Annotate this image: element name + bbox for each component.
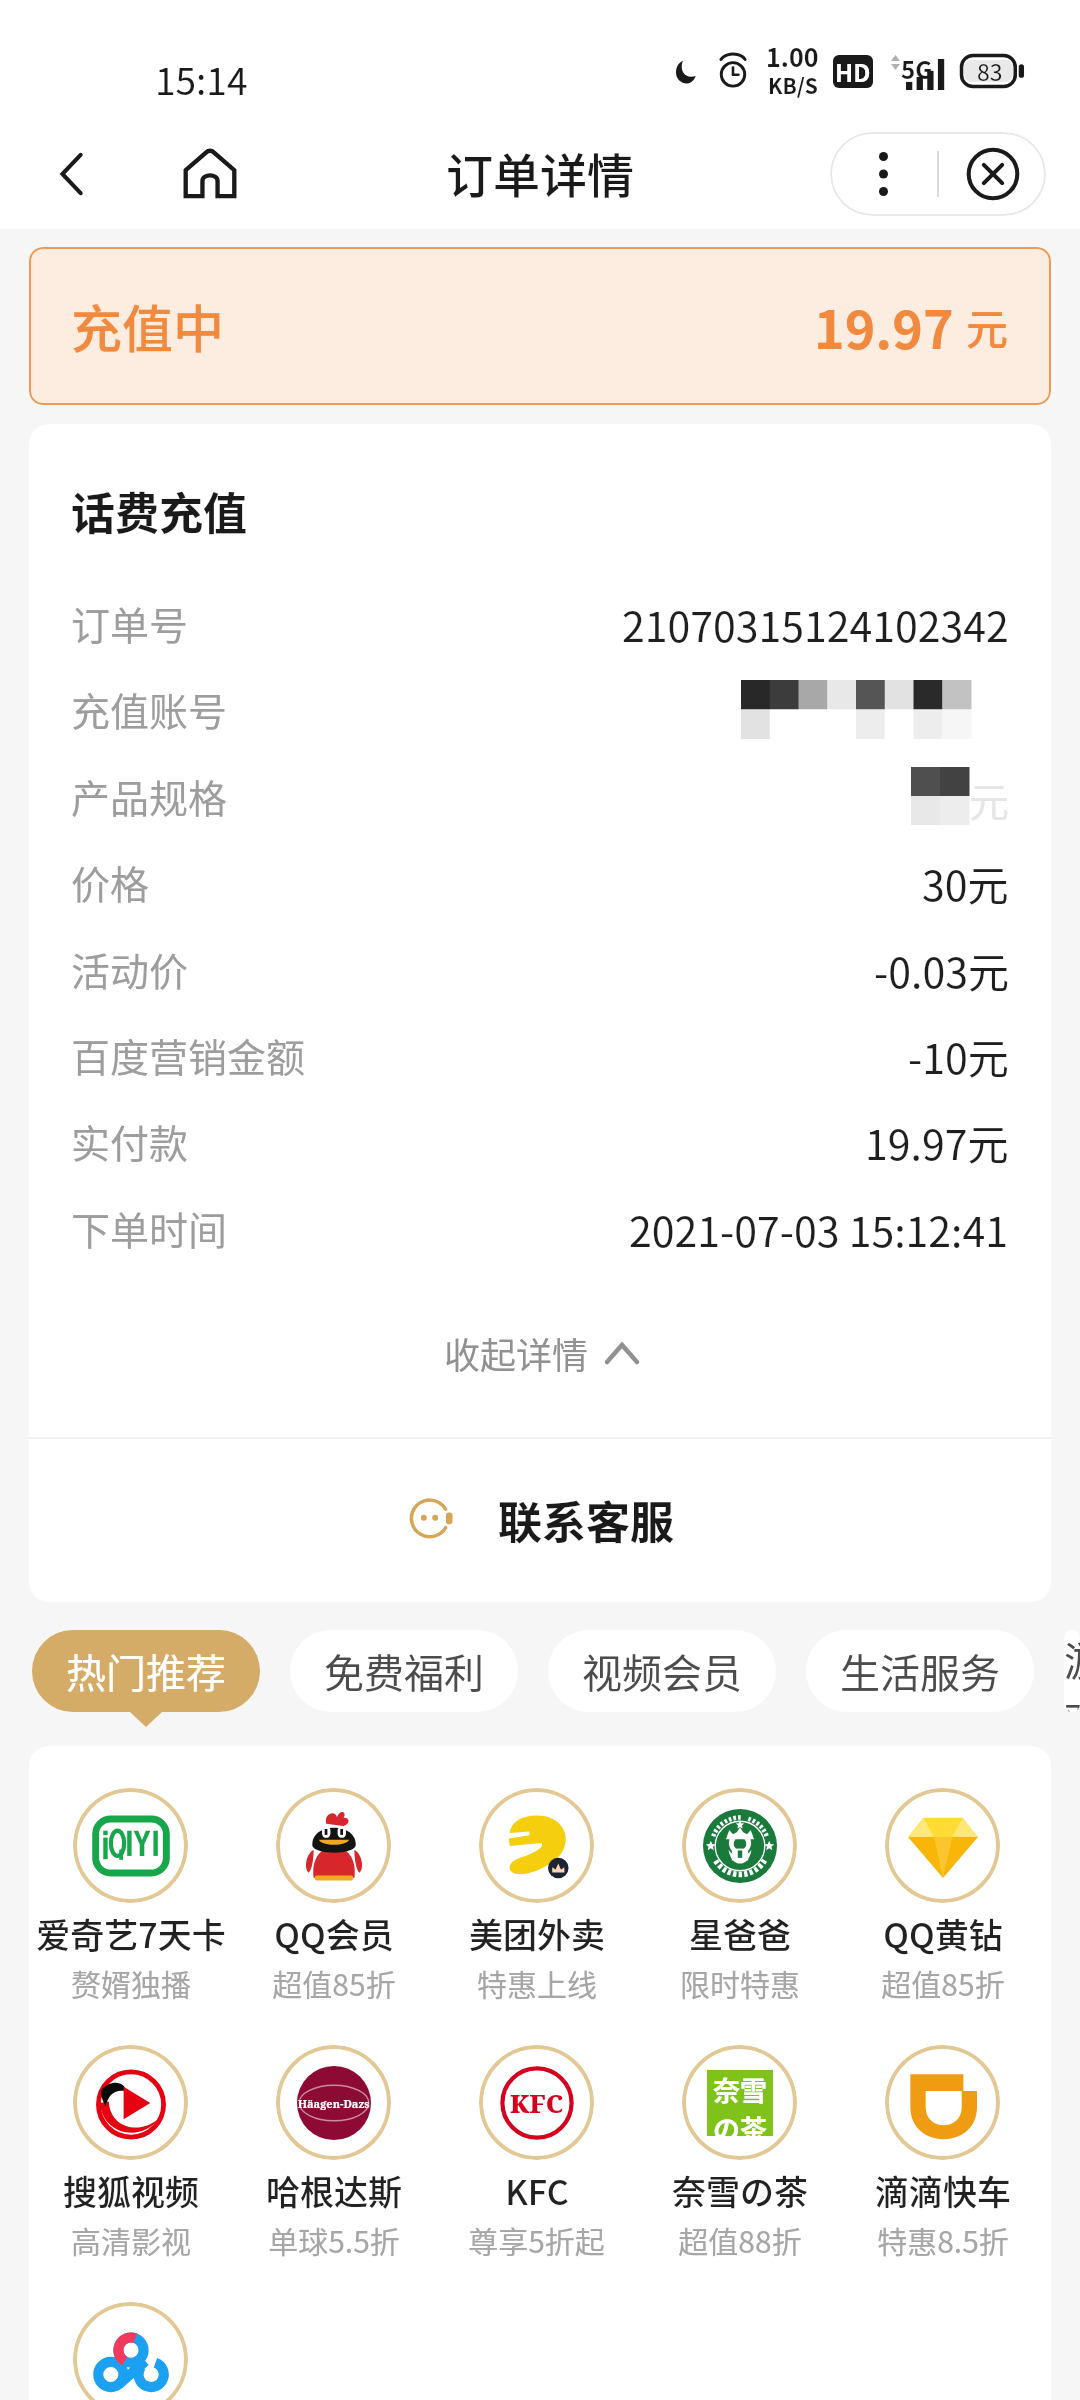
staticText: QQ会员	[274, 1909, 394, 1958]
staticText: 限时特惠	[680, 1961, 800, 2004]
staticText: 搜狐视频	[63, 2166, 199, 2215]
button[interactable]: QQ会员	[232, 1788, 435, 2045]
staticText: 19.97	[814, 289, 954, 364]
staticText: 收起详情	[444, 1327, 589, 1379]
button[interactable]: 充值中	[29, 247, 1051, 405]
staticText: 元	[969, 771, 1009, 829]
button[interactable]: 生活服务	[806, 1630, 1034, 1712]
button[interactable]: 游戏专区	[1064, 1630, 1080, 1712]
button[interactable]: Back	[30, 132, 114, 216]
staticText: 特惠8.5折	[877, 2218, 1009, 2261]
button[interactable]: 热门推荐	[32, 1630, 260, 1712]
staticText: 尊享5折起	[468, 2218, 605, 2261]
staticText: 产品规格	[71, 768, 228, 824]
button[interactable]: Home	[168, 132, 252, 216]
button[interactable]: 美团外卖	[435, 1788, 638, 2045]
staticText: HD	[835, 55, 871, 87]
staticText: 充值账号	[71, 681, 228, 737]
staticText: 超值85折	[881, 1961, 1005, 2004]
staticText: 订单详情	[446, 138, 634, 206]
button[interactable]: 奈	[638, 2045, 841, 2302]
button[interactable]: More options	[830, 132, 937, 216]
staticText: 83	[977, 54, 1003, 87]
staticText: 话费充值	[71, 479, 247, 539]
button[interactable]: 联系客服	[29, 1438, 1051, 1602]
button[interactable]: KFC	[435, 2045, 638, 2302]
staticText: Häagen-Dazs	[298, 2096, 370, 2111]
staticText: KB/S	[768, 70, 818, 100]
button[interactable]: 搜狐视频	[29, 2045, 232, 2302]
staticText: 茶	[740, 2109, 767, 2136]
staticText: 视频会员	[582, 1642, 742, 1700]
staticText: 充值中	[71, 289, 225, 363]
staticText: 百度营销金额	[71, 1027, 306, 1083]
staticText: 美团外卖	[469, 1909, 605, 1958]
button[interactable]: 百度网盘	[29, 2302, 232, 2400]
button[interactable]: Close	[939, 132, 1046, 216]
staticText: 奈	[713, 2070, 740, 2109]
button[interactable]: 视频会员	[548, 1630, 776, 1712]
button[interactable]: Häagen-Dazs	[232, 2045, 435, 2302]
staticText: 热门推荐	[66, 1642, 226, 1700]
button[interactable]: QQ黄钻	[841, 1788, 1044, 2045]
staticText: 1.00	[766, 38, 819, 74]
staticText: QQ黄钻	[883, 1909, 1003, 1958]
button[interactable]: 爱奇艺7天卡	[29, 1788, 232, 2045]
staticText: 活动价	[71, 941, 189, 997]
staticText: 生活服务	[840, 1642, 1000, 1700]
staticText: 联系客服	[498, 1488, 674, 1552]
staticText: 赘婿独播	[71, 1961, 191, 2004]
staticText: 单球5.5折	[268, 2218, 400, 2261]
button[interactable]: 滴滴快车	[841, 2045, 1044, 2302]
staticText: KFC	[505, 2166, 569, 2215]
staticText: 超值88折	[678, 2218, 802, 2261]
staticText: 哈根达斯	[266, 2166, 402, 2215]
staticText: 2021-07-03 15:12:41	[629, 1199, 1009, 1258]
staticText: 19.97元	[865, 1112, 1009, 1171]
staticText: -10元	[908, 1026, 1009, 1085]
staticText: 雪	[740, 2070, 767, 2109]
staticText: 奈雪の茶	[672, 2166, 808, 2215]
staticText: の	[713, 2109, 740, 2136]
staticText: 高清影视	[71, 2218, 191, 2261]
staticText: 滴滴快车	[875, 2166, 1011, 2215]
staticText: -0.03元	[874, 940, 1009, 999]
staticText: 游戏专区	[1064, 1630, 1080, 1712]
staticText: 订单号	[71, 595, 189, 651]
button[interactable]: 收起详情	[29, 1279, 1051, 1427]
staticText: 21070315124102342	[622, 594, 1009, 653]
staticText: 星爸爸	[689, 1909, 791, 1958]
staticText: 15:14	[155, 52, 248, 106]
staticText: 5G	[901, 51, 933, 86]
button[interactable]: 免费福利	[290, 1630, 518, 1712]
staticText: 元	[966, 296, 1009, 357]
staticText: 价格	[71, 854, 150, 910]
staticText: 免费福利	[324, 1642, 484, 1700]
staticText: 30元	[922, 853, 1009, 912]
staticText: 特惠上线	[477, 1961, 597, 2004]
staticText: KFC	[510, 2086, 564, 2120]
button[interactable]: 星爸爸	[638, 1788, 841, 2045]
staticText: 实付款	[71, 1113, 189, 1169]
staticText: 超值85折	[272, 1961, 396, 2004]
staticText: 爱奇艺7天卡	[36, 1909, 226, 1958]
staticText: 下单时间	[71, 1200, 228, 1256]
